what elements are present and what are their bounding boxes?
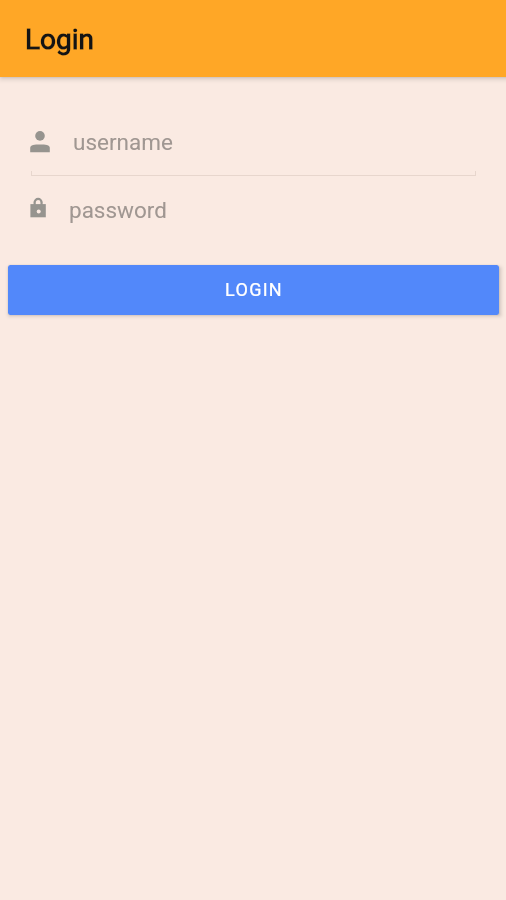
staticText: LOGIN xyxy=(225,279,283,300)
staticText: Login xyxy=(25,23,95,56)
button[interactable]: LOGIN xyxy=(8,265,499,315)
button[interactable]: Password xyxy=(0,184,506,236)
staticText: password xyxy=(69,197,167,223)
staticText: username xyxy=(73,129,173,155)
button[interactable]: Username xyxy=(0,116,506,168)
other: Password xyxy=(30,198,46,222)
other: Username xyxy=(28,130,52,154)
